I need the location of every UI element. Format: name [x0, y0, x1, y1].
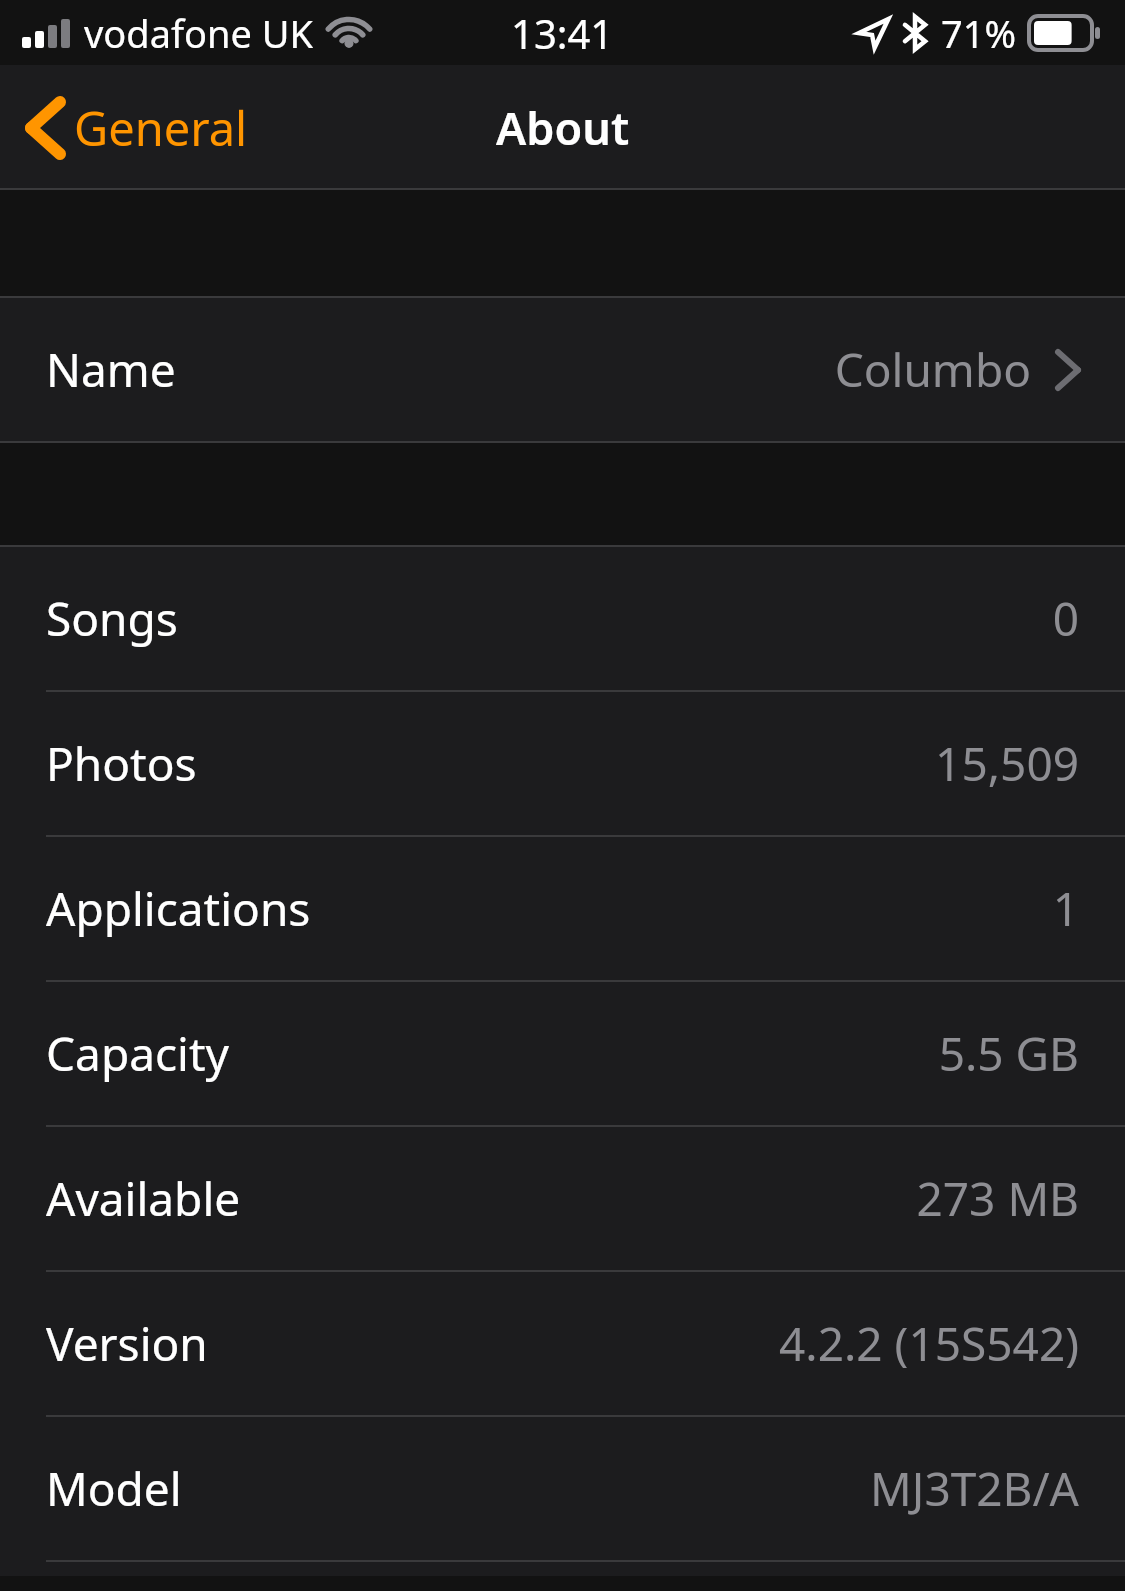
button[interactable]: Songs — [0, 547, 1125, 690]
staticText: 4.2.2 (15S542) — [779, 1312, 1079, 1375]
button[interactable]: General — [0, 86, 268, 170]
staticText: 1 — [1052, 877, 1079, 940]
button[interactable]: Applications — [0, 837, 1125, 980]
staticText: Version — [46, 1312, 208, 1375]
staticText: Songs — [46, 587, 178, 650]
staticText: Name — [46, 338, 176, 401]
staticText: General — [74, 96, 248, 160]
staticText: Model — [46, 1457, 182, 1520]
staticText: 0 — [1052, 587, 1079, 650]
button[interactable]: Name — [0, 298, 1125, 441]
button[interactable]: Photos — [0, 692, 1125, 835]
staticText: Columbo — [834, 338, 1031, 401]
staticText: Photos — [46, 732, 197, 795]
staticText: About — [496, 97, 630, 158]
staticText: 13:41 — [511, 6, 614, 60]
button[interactable]: Capacity — [0, 982, 1125, 1125]
button[interactable]: Available — [0, 1127, 1125, 1270]
staticText: 15,509 — [935, 732, 1079, 795]
button[interactable]: Version — [0, 1272, 1125, 1415]
staticText: Applications — [46, 877, 311, 940]
staticText: MJ3T2B/A — [870, 1457, 1079, 1520]
staticText: Available — [46, 1167, 241, 1230]
staticText: 273 MB — [916, 1167, 1079, 1230]
staticText: Capacity — [46, 1022, 229, 1085]
staticText: 5.5 GB — [938, 1022, 1079, 1085]
staticText: vodafone UK — [84, 7, 314, 59]
button[interactable]: Model — [0, 1417, 1125, 1560]
staticText: 71% — [941, 7, 1017, 59]
